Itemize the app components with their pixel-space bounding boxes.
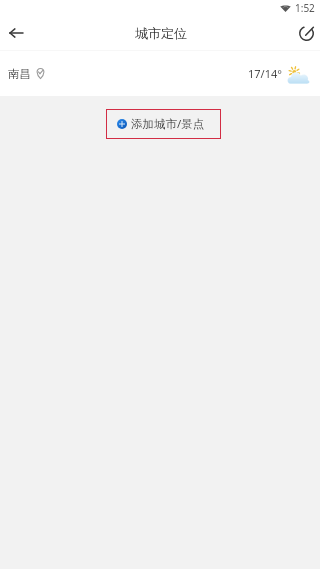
- staticText: 南昌: [8, 67, 31, 81]
- button[interactable]: Back: [0, 18, 30, 48]
- button[interactable]: 添加城市/景点: [106, 109, 221, 139]
- button[interactable]: Edit: [294, 21, 318, 45]
- staticText: 17/14°: [248, 66, 282, 81]
- staticText: 城市定位: [135, 25, 187, 41]
- staticText: 1:52: [295, 1, 315, 15]
- button[interactable]: 南昌: [0, 51, 320, 96]
- staticText: 添加城市/景点: [131, 116, 205, 132]
